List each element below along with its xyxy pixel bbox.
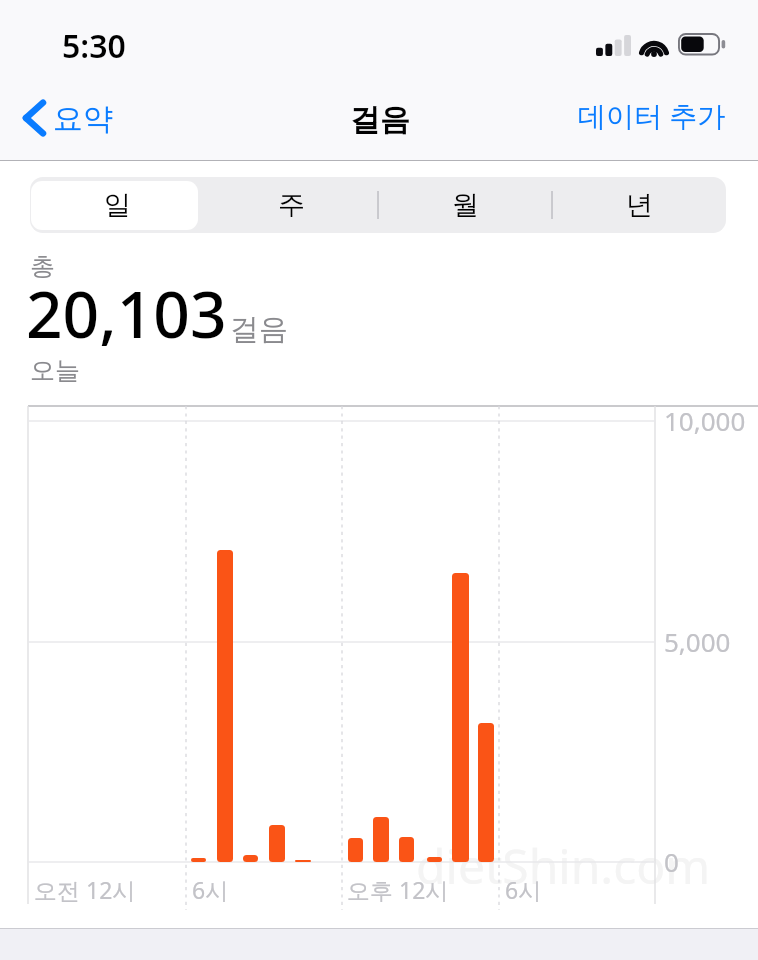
staticText: 6시 <box>192 874 229 905</box>
staticText: 6시 <box>505 874 542 905</box>
staticText: 0 <box>664 844 679 879</box>
staticText: 주 <box>278 188 305 222</box>
button[interactable]: 년 <box>552 177 726 233</box>
staticText: 월 <box>452 188 479 222</box>
other: Back <box>22 98 47 138</box>
other: Battery <box>678 33 727 56</box>
staticText: 오전 12시 <box>34 874 136 905</box>
button[interactable]: 데이터 추가 <box>562 86 742 144</box>
staticText: 10,000 <box>664 403 746 438</box>
staticText: 5,000 <box>664 624 731 659</box>
staticText: 총 <box>30 251 55 282</box>
staticText: 오늘 <box>30 355 80 386</box>
button[interactable]: 일 <box>30 177 204 233</box>
other: Wi-Fi <box>639 33 669 56</box>
staticText: 걸음 <box>230 311 288 348</box>
staticText: 20,103 <box>26 270 227 357</box>
staticText: 5:30 <box>62 24 126 68</box>
button[interactable]: 주 <box>204 177 378 233</box>
staticText: 년 <box>626 188 653 222</box>
staticText: 오후 12시 <box>347 874 449 905</box>
staticText: dietShin.com <box>416 833 711 898</box>
button[interactable]: Back <box>16 94 125 142</box>
button[interactable]: 월 <box>378 177 552 233</box>
staticText: 일 <box>104 188 131 222</box>
other: Cellular signal <box>596 35 631 56</box>
staticText: 걸음 <box>350 101 410 139</box>
staticText: 요약 <box>53 100 113 138</box>
